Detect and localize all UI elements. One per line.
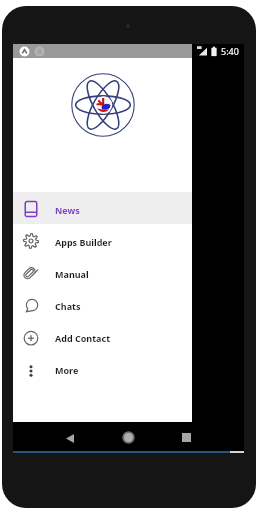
button[interactable]: Home <box>120 428 138 446</box>
button[interactable]: Chats <box>13 288 192 320</box>
staticText: 5:40 <box>221 45 239 57</box>
staticText: More <box>55 364 79 376</box>
staticText: Chats <box>55 300 81 312</box>
button[interactable]: News <box>13 192 192 224</box>
button[interactable]: More <box>13 352 192 384</box>
staticText: News <box>55 204 80 216</box>
button[interactable]: Manual <box>13 256 192 288</box>
staticText: Manual <box>55 268 89 280</box>
staticText: Add Contact <box>55 332 111 344</box>
button[interactable]: Back <box>61 428 79 446</box>
staticText: Apps Builder <box>55 236 112 248</box>
button[interactable]: Apps Builder <box>13 224 192 256</box>
button[interactable]: Recent apps <box>179 428 197 446</box>
button[interactable]: Add Contact <box>13 320 192 352</box>
